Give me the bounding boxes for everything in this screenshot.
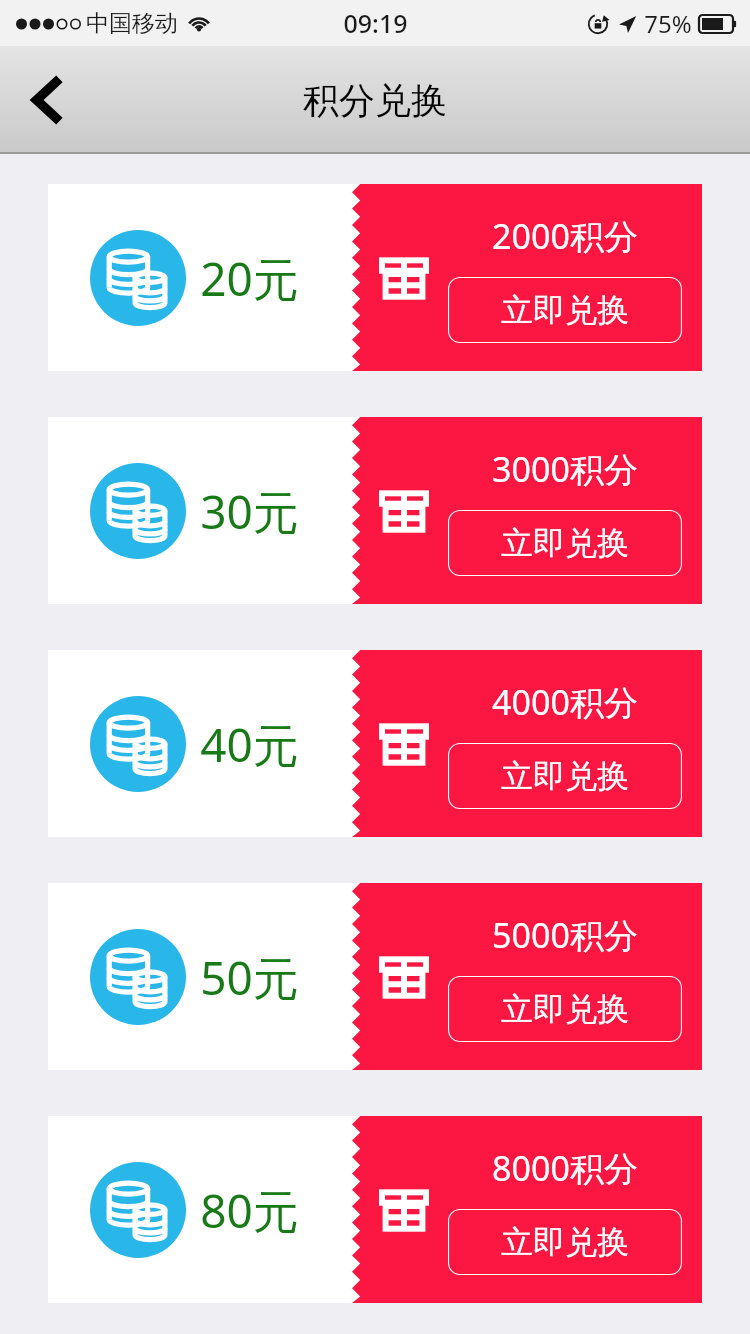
staticText: 积分兑换	[303, 78, 447, 123]
staticText: 立即兑换	[501, 523, 629, 563]
button[interactable]: 立即兑换	[448, 277, 682, 343]
staticText: 20元	[200, 247, 299, 310]
staticText: 80元	[200, 1179, 299, 1242]
staticText: 40元	[200, 713, 299, 776]
button[interactable]: 5000积分	[48, 883, 702, 1070]
button[interactable]: 立即兑换	[448, 510, 682, 576]
button[interactable]: 8000积分	[48, 1116, 702, 1303]
staticText: 立即兑换	[501, 756, 629, 796]
staticText: 50元	[200, 946, 299, 1009]
button[interactable]: 3000积分	[48, 417, 702, 604]
staticText: 09:19	[343, 6, 408, 40]
button[interactable]: 立即兑换	[448, 1209, 682, 1275]
staticText: 立即兑换	[501, 290, 629, 330]
staticText: 30元	[200, 480, 299, 543]
staticText: 立即兑换	[501, 1222, 629, 1262]
button[interactable]: 4000积分	[48, 650, 702, 837]
staticText: 3000积分	[492, 446, 638, 492]
staticText: 2000积分	[492, 213, 638, 259]
staticText: 5000积分	[492, 912, 638, 958]
staticText: 4000积分	[492, 679, 638, 725]
button[interactable]: 2000积分	[48, 184, 702, 371]
staticText: 中国移动	[86, 9, 178, 38]
staticText: 75%	[644, 7, 692, 40]
button[interactable]: 立即兑换	[448, 976, 682, 1042]
staticText: 8000积分	[492, 1145, 638, 1191]
staticText: 立即兑换	[501, 989, 629, 1029]
button[interactable]: 立即兑换	[448, 743, 682, 809]
button[interactable]: Back	[0, 46, 96, 154]
